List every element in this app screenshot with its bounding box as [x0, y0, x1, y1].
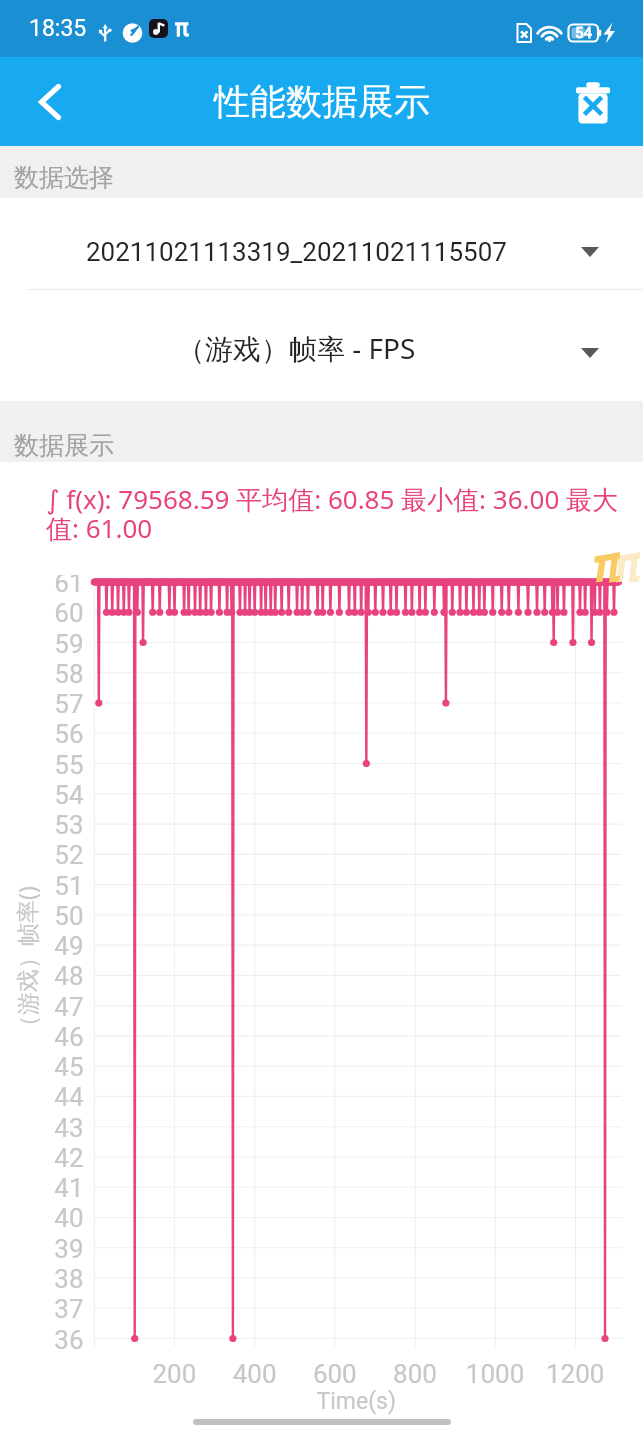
staticText: 数据展示: [14, 430, 114, 461]
staticText: 20211021113319_20211021115507: [86, 237, 507, 267]
button[interactable]: （游戏）帧率 - FPS: [0, 290, 643, 401]
staticText: 18:35: [29, 15, 87, 42]
button[interactable]: 20211021113319_20211021115507: [0, 198, 643, 289]
staticText: 数据选择: [14, 162, 114, 193]
staticText: 54: [575, 24, 592, 42]
button[interactable]: Back: [16, 68, 84, 136]
staticText: （游戏）帧率 - FPS: [177, 329, 416, 367]
staticText: π: [175, 15, 189, 42]
button[interactable]: Delete: [561, 70, 625, 134]
staticText: ∫ f(x): 79568.59 平均值: 60.85 最小值: 36.00 最…: [46, 481, 634, 546]
staticText: 性能数据展示: [214, 79, 430, 124]
